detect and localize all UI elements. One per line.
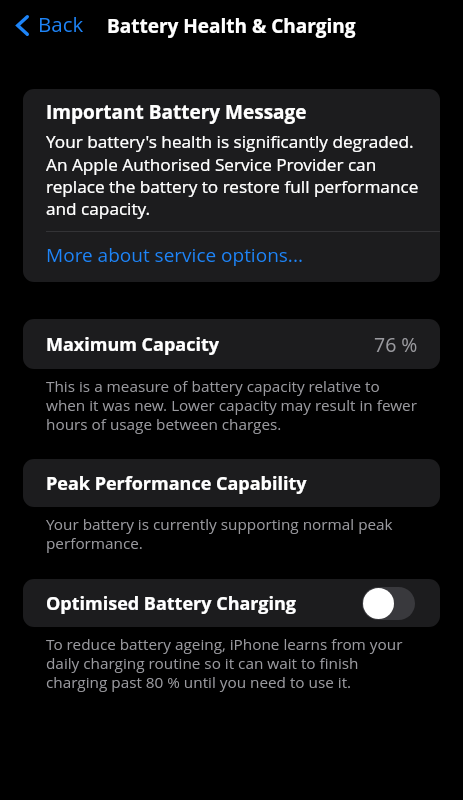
staticText: To reduce battery ageing, iPhone learns … xyxy=(46,634,421,692)
staticText: Maximum Capacity xyxy=(46,332,220,357)
staticText: Peak Performance Capability xyxy=(46,471,307,496)
button[interactable]: More about service options... xyxy=(23,232,440,282)
staticText: Back xyxy=(38,10,84,38)
staticText: Battery Health & Charging xyxy=(107,13,356,39)
staticText: Your battery is currently supporting nor… xyxy=(46,514,421,553)
staticText: Important Battery Message xyxy=(46,99,307,125)
staticText: 76 % xyxy=(374,331,418,358)
staticText: More about service options... xyxy=(46,242,304,268)
button[interactable]: Back xyxy=(9,3,91,47)
button[interactable]: Peak Performance Capability xyxy=(23,459,440,507)
button[interactable]: Maximum Capacity xyxy=(23,319,440,369)
staticText: Optimised Battery Charging xyxy=(46,591,296,616)
staticText: Your battery's health is significantly d… xyxy=(46,130,431,220)
staticText: This is a measure of battery capacity re… xyxy=(46,376,421,434)
button[interactable]: Optimised Battery Charging, off xyxy=(362,587,415,620)
